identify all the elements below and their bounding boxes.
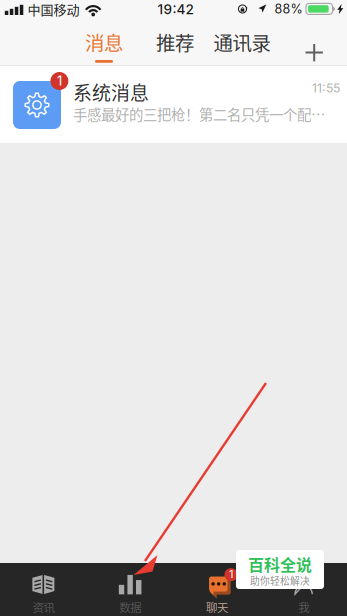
staticText: 11:55 [312,81,340,95]
button[interactable]: 1 [0,66,347,143]
staticText: 88% [275,1,303,17]
button[interactable]: 1 [173,563,260,616]
button[interactable]: 数据 [87,563,174,616]
button[interactable]: 通讯录 [206,22,278,66]
staticText: 中国移动 [27,0,79,18]
staticText: 系统消息 [73,78,149,106]
staticText: 数据 [119,599,141,615]
staticText: 推荐 [156,28,194,56]
staticText: 通讯录 [213,28,270,56]
staticText: 助你轻松解决 [250,573,310,588]
button[interactable]: 资讯 [0,563,87,616]
staticText: 我 [298,599,309,615]
staticText: 消息 [85,28,123,56]
staticText: 19:42 [157,1,193,17]
button[interactable]: 推荐 [147,22,203,66]
button[interactable]: 我 [260,563,347,616]
staticText: 聊天 [206,599,228,615]
staticText: 资讯 [32,599,54,615]
staticText: 1 [57,73,62,89]
staticText: 手感最好的三把枪！第二名只凭一个配… [73,104,325,124]
button[interactable]: 消息 [76,22,132,66]
button[interactable]: Add [292,31,336,74]
button[interactable]: 百科全说 [236,550,324,589]
staticText: 1 [229,568,233,580]
staticText: 百科全说 [248,552,312,576]
